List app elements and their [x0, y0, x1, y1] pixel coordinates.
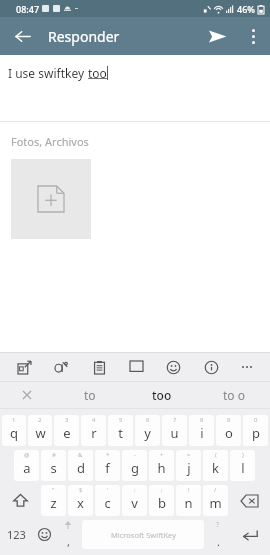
- button[interactable]: @: [14, 450, 39, 481]
- staticText: a: [23, 459, 31, 477]
- button[interactable]: /: [203, 485, 228, 516]
- button[interactable]: More options: [236, 19, 270, 53]
- staticText: (: [215, 451, 217, 459]
- button[interactable]: I use swiftkey: [0, 55, 270, 121]
- button[interactable]: Dismiss: [0, 382, 54, 408]
- button[interactable]: Clipboard: [89, 356, 109, 378]
- button[interactable]: Comma: [56, 520, 80, 549]
- button[interactable]: Shift: [1, 485, 40, 516]
- staticText: ;: [161, 486, 163, 494]
- staticText: .: [217, 534, 220, 549]
- staticText: l: [241, 459, 245, 477]
- button[interactable]: 7: [162, 415, 187, 446]
- staticText: ': [107, 486, 109, 494]
- button[interactable]: 2: [28, 415, 52, 446]
- button[interactable]: Add attachment: [11, 159, 91, 239]
- button[interactable]: 9: [216, 415, 241, 446]
- staticText: -: [134, 451, 136, 459]
- staticText: y: [144, 424, 151, 442]
- staticText: n: [184, 494, 193, 512]
- staticText: t: [118, 424, 123, 442]
- staticText: v: [131, 494, 138, 512]
- staticText: =: [187, 451, 191, 459]
- staticText: Fotos, Archivos: [11, 134, 89, 149]
- button[interactable]: ;: [149, 485, 174, 516]
- button[interactable]: Backspace: [229, 485, 269, 516]
- button[interactable]: !: [176, 485, 201, 516]
- button[interactable]: Stickers: [163, 356, 183, 378]
- button[interactable]: (: [203, 450, 228, 481]
- staticText: +: [160, 451, 164, 459]
- staticText: *: [106, 451, 110, 459]
- button[interactable]: 3: [54, 415, 79, 446]
- button[interactable]: *: [95, 450, 120, 481]
- staticText: z: [50, 494, 57, 512]
- staticText: c: [104, 494, 111, 512]
- button[interactable]: $: [68, 485, 93, 516]
- staticText: 1: [12, 416, 16, 424]
- button[interactable]: Info: [201, 356, 221, 378]
- staticText: e: [63, 424, 71, 442]
- staticText: too: [88, 65, 107, 81]
- button[interactable]: ": [41, 485, 66, 516]
- staticText: f: [105, 459, 110, 477]
- staticText: 46%: [237, 3, 255, 15]
- button[interactable]: More: [238, 357, 256, 377]
- button[interactable]: Expand: [14, 356, 34, 378]
- button[interactable]: GIF: [126, 356, 146, 378]
- staticText: I use swiftkey: [8, 65, 88, 81]
- staticText: 9: [227, 416, 231, 424]
- button[interactable]: to o: [198, 382, 270, 408]
- button[interactable]: 0: [243, 415, 268, 446]
- button[interactable]: Enter: [230, 520, 269, 549]
- staticText: 5: [119, 416, 123, 424]
- button[interactable]: -: [122, 450, 147, 481]
- button[interactable]: too: [126, 382, 198, 408]
- staticText: Responder: [48, 27, 120, 46]
- staticText: 7: [173, 416, 177, 424]
- staticText: :: [134, 486, 136, 494]
- staticText: q: [10, 424, 18, 442]
- button[interactable]: 1: [2, 415, 26, 446]
- staticText: p: [252, 424, 260, 442]
- button[interactable]: ': [95, 485, 120, 516]
- button[interactable]: Period: [206, 520, 230, 549]
- staticText: 4: [92, 416, 96, 424]
- button[interactable]: #: [41, 450, 66, 481]
- button[interactable]: +: [149, 450, 174, 481]
- staticText: g: [131, 459, 139, 477]
- button[interactable]: to: [54, 382, 126, 408]
- button[interactable]: Space: [82, 520, 204, 549]
- button[interactable]: Translate: [51, 356, 71, 378]
- staticText: @: [24, 451, 30, 459]
- button[interactable]: :: [122, 485, 147, 516]
- staticText: i: [200, 424, 204, 442]
- button[interactable]: Send: [198, 17, 236, 55]
- staticText: ": [52, 486, 55, 494]
- staticText: k: [212, 459, 219, 477]
- staticText: $: [79, 486, 83, 494]
- staticText: too: [152, 387, 172, 403]
- staticText: !: [188, 486, 190, 494]
- button[interactable]: 8: [189, 415, 214, 446]
- button[interactable]: =: [176, 450, 201, 481]
- staticText: ,: [67, 534, 70, 549]
- staticText: to o: [223, 387, 245, 403]
- button[interactable]: 4: [81, 415, 106, 446]
- button[interactable]: Back: [6, 20, 38, 52]
- staticText: #: [52, 451, 56, 459]
- button[interactable]: 123: [1, 520, 32, 549]
- staticText: ?: [216, 520, 220, 530]
- staticText: u: [170, 424, 179, 442]
- button[interactable]: Emoji: [32, 520, 56, 549]
- staticText: /: [214, 486, 217, 494]
- button[interactable]: &: [68, 450, 93, 481]
- staticText: b: [158, 494, 166, 512]
- button[interactable]: ): [230, 450, 255, 481]
- staticText: o: [225, 424, 233, 442]
- staticText: Microsoft SwiftKey: [111, 530, 176, 540]
- staticText: 123: [7, 527, 26, 542]
- button[interactable]: 6: [135, 415, 160, 446]
- button[interactable]: 5: [108, 415, 133, 446]
- staticText: &: [78, 451, 83, 459]
